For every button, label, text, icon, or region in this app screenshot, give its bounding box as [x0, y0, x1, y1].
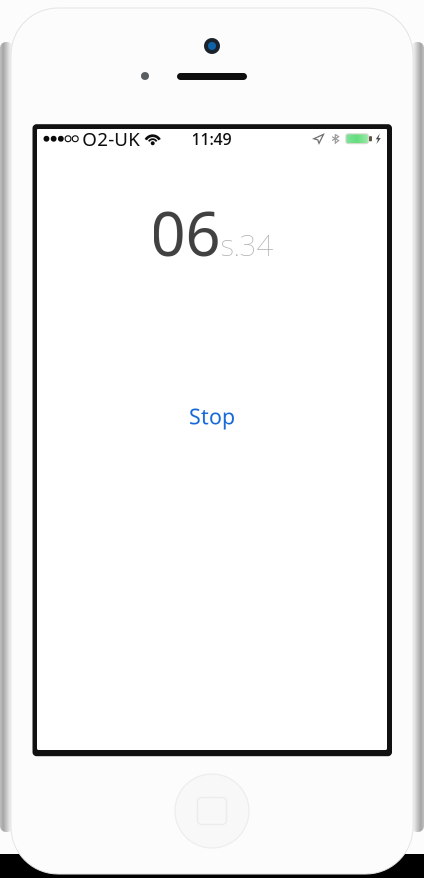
staticText: O2-UK — [82, 126, 140, 151]
staticText: Stop — [189, 402, 235, 430]
staticText: 06 — [150, 191, 220, 273]
staticText: s.34 — [220, 225, 273, 264]
button[interactable]: Stop — [173, 396, 251, 436]
staticText: 11:49 — [191, 128, 231, 149]
